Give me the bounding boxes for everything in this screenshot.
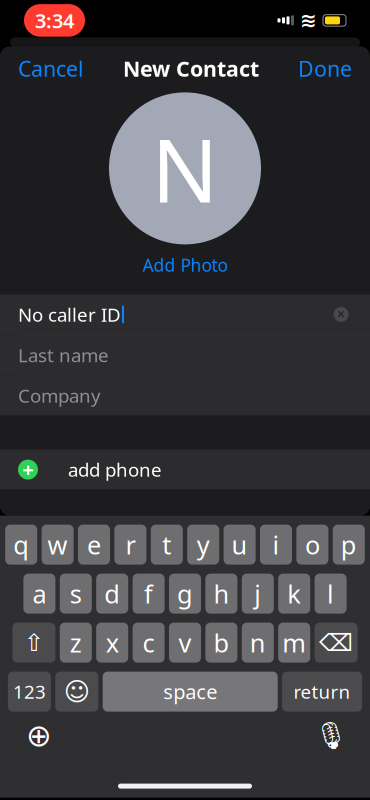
- button[interactable]: l: [315, 574, 347, 614]
- staticText: N: [151, 110, 218, 227]
- button[interactable]: k: [278, 574, 310, 614]
- button[interactable]: z: [60, 623, 92, 663]
- button[interactable]: return: [282, 672, 362, 712]
- staticText: Done: [298, 54, 352, 82]
- button[interactable]: o: [296, 525, 328, 565]
- button[interactable]: Delete: [315, 623, 358, 663]
- staticText: r: [125, 528, 135, 561]
- button[interactable]: y: [187, 525, 219, 565]
- staticText: Cancel: [18, 54, 84, 82]
- staticText: i: [272, 528, 279, 561]
- staticText: Add Photo: [142, 253, 227, 276]
- button[interactable]: e: [78, 525, 110, 565]
- button[interactable]: p: [333, 525, 365, 565]
- button[interactable]: +: [0, 450, 370, 490]
- button[interactable]: m: [278, 623, 310, 663]
- staticText: ✕: [336, 308, 345, 320]
- button[interactable]: q: [5, 525, 37, 565]
- staticText: 🎙: [314, 720, 348, 751]
- staticText: No caller ID: [18, 302, 121, 327]
- staticText: k: [287, 577, 301, 610]
- staticText: n: [250, 626, 266, 659]
- button[interactable]: Cancel: [0, 44, 102, 92]
- button[interactable]: n: [242, 623, 274, 663]
- staticText: return: [294, 679, 351, 704]
- staticText: h: [213, 577, 229, 610]
- button[interactable]: h: [205, 574, 237, 614]
- button[interactable]: Dictation: [308, 716, 354, 756]
- staticText: ☺: [64, 677, 90, 706]
- button[interactable]: w: [42, 525, 74, 565]
- staticText: u: [232, 528, 248, 561]
- button[interactable]: g: [169, 574, 201, 614]
- button[interactable]: Next keyboard: [16, 716, 62, 756]
- staticText: ⊕: [26, 718, 52, 753]
- staticText: ⇧: [24, 629, 44, 656]
- button[interactable]: Add Photo: [132, 244, 237, 280]
- staticText: New Contact: [123, 54, 259, 82]
- button[interactable]: b: [205, 623, 237, 663]
- staticText: p: [341, 528, 357, 561]
- staticText: a: [32, 577, 46, 610]
- staticText: q: [13, 528, 29, 561]
- staticText: d: [104, 577, 120, 610]
- staticText: 3:34: [35, 7, 74, 34]
- staticText: Company: [18, 383, 101, 408]
- button[interactable]: t: [151, 525, 183, 565]
- button[interactable]: v: [169, 623, 201, 663]
- button[interactable]: a: [23, 574, 55, 614]
- staticText: g: [177, 577, 193, 610]
- button[interactable]: j: [242, 574, 274, 614]
- staticText: s: [70, 577, 82, 610]
- button[interactable]: d: [96, 574, 128, 614]
- staticText: m: [282, 626, 306, 659]
- staticText: c: [143, 626, 155, 659]
- staticText: t: [162, 528, 171, 561]
- staticText: Last name: [18, 343, 109, 367]
- staticText: ⌫: [319, 629, 353, 656]
- staticText: space: [163, 678, 217, 705]
- button[interactable]: Emoji: [55, 672, 98, 712]
- staticText: v: [178, 626, 191, 659]
- button[interactable]: f: [133, 574, 165, 614]
- staticText: +: [22, 456, 33, 483]
- staticText: j: [254, 577, 261, 610]
- button[interactable]: Shift: [12, 623, 55, 663]
- staticText: 123: [13, 679, 46, 704]
- button[interactable]: Clear text: [326, 299, 356, 329]
- button[interactable]: 123: [8, 672, 51, 712]
- staticText: ≋: [300, 9, 317, 32]
- staticText: x: [106, 626, 119, 659]
- staticText: e: [87, 528, 101, 561]
- button[interactable]: r: [114, 525, 146, 565]
- staticText: z: [70, 626, 82, 659]
- button[interactable]: Done: [280, 44, 370, 92]
- button[interactable]: x: [96, 623, 128, 663]
- staticText: l: [327, 577, 334, 610]
- button[interactable]: u: [224, 525, 256, 565]
- button[interactable]: c: [133, 623, 165, 663]
- button[interactable]: s: [60, 574, 92, 614]
- staticText: o: [305, 528, 320, 561]
- staticText: y: [197, 528, 210, 561]
- staticText: b: [213, 626, 229, 659]
- staticText: add phone: [68, 457, 162, 482]
- button[interactable]: space: [103, 672, 278, 712]
- staticText: w: [48, 528, 68, 561]
- staticText: f: [144, 577, 153, 610]
- button[interactable]: i: [260, 525, 292, 565]
- button[interactable]: Contact photo: [109, 92, 261, 244]
